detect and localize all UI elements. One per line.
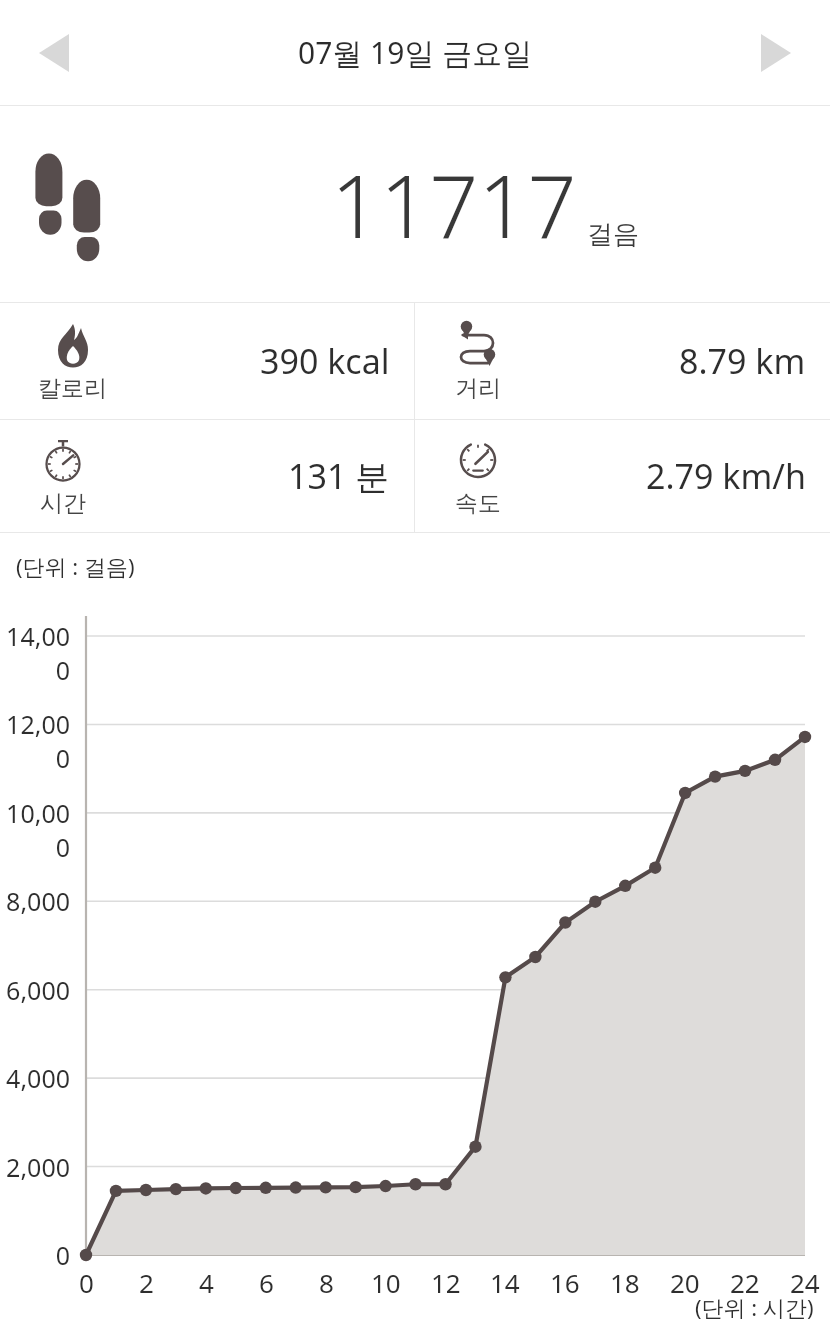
- staticText: 걸음: [587, 218, 639, 251]
- staticText: 칼로리: [38, 374, 107, 403]
- staticText: 07월 19일 금요일: [298, 32, 533, 73]
- staticText: 0: [55, 1238, 70, 1272]
- button[interactable]: 07월 19일 금요일: [298, 32, 533, 73]
- staticText: 12: [431, 1265, 461, 1300]
- staticText: 131 분: [288, 453, 390, 499]
- staticText: 14,000: [0, 619, 70, 687]
- staticText: 390 kcal: [260, 338, 390, 384]
- staticText: 16: [550, 1265, 580, 1300]
- staticText: 거리: [455, 374, 501, 403]
- button[interactable]: 11717: [0, 106, 830, 302]
- staticText: 18: [610, 1265, 640, 1300]
- staticText: 10,000: [0, 796, 70, 864]
- button[interactable]: 시간: [0, 420, 414, 532]
- staticText: 14: [490, 1265, 520, 1300]
- staticText: 시간: [40, 489, 86, 518]
- staticText: 11717: [331, 146, 577, 263]
- staticText: 8: [319, 1265, 334, 1300]
- staticText: 8.79 km: [679, 338, 806, 384]
- button[interactable]: Previous day: [18, 17, 90, 89]
- staticText: 2: [139, 1265, 154, 1300]
- button[interactable]: 거리: [415, 303, 830, 419]
- staticText: 속도: [455, 489, 501, 518]
- button[interactable]: Next day: [740, 17, 812, 89]
- staticText: 2.79 km/h: [646, 453, 806, 499]
- staticText: 20: [670, 1265, 700, 1300]
- staticText: 2,000: [6, 1150, 70, 1184]
- staticText: (단위 : 시간): [695, 1292, 814, 1322]
- staticText: 24: [790, 1265, 820, 1300]
- staticText: 0: [79, 1265, 94, 1300]
- staticText: (단위 : 걸음): [16, 551, 135, 581]
- staticText: 6,000: [6, 973, 70, 1007]
- staticText: 10: [371, 1265, 401, 1300]
- staticText: 8,000: [6, 884, 70, 918]
- staticText: 22: [730, 1265, 760, 1300]
- staticText: 4,000: [6, 1061, 70, 1095]
- button[interactable]: 칼로리: [0, 303, 414, 419]
- staticText: 6: [259, 1265, 274, 1300]
- staticText: 12,000: [0, 707, 70, 775]
- button[interactable]: 속도: [415, 420, 830, 532]
- staticText: 4: [199, 1265, 214, 1300]
